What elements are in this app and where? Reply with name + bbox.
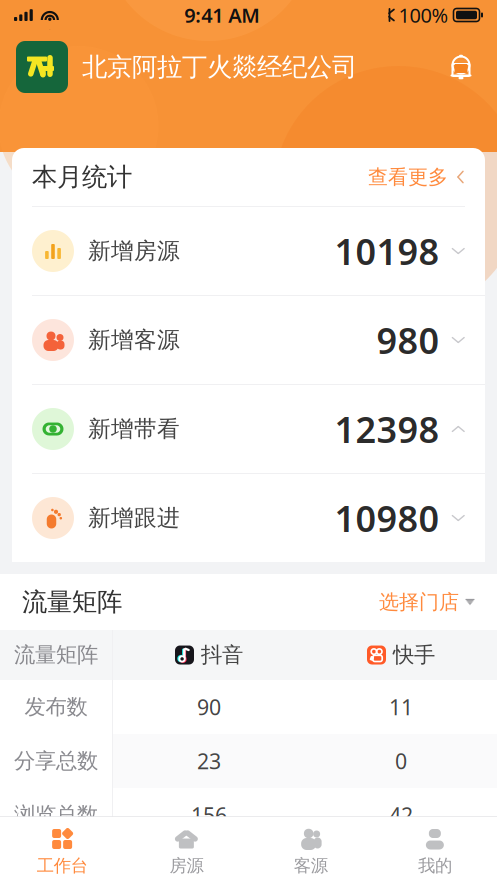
button[interactable]: 新增带看 [12,385,485,473]
staticText: 100% [398,2,448,28]
staticText: 新增客源 [88,326,180,354]
staticText: 0 [395,747,407,775]
staticText: 11 [389,693,413,721]
staticText: 选择门店 [379,590,459,614]
button[interactable]: 选择门店 [379,590,475,614]
staticText: 10198 [334,227,439,275]
button[interactable]: 本月统计 [12,148,485,206]
staticText: 查看更多 [368,165,448,189]
staticText: 流量矩阵 [22,586,122,617]
staticText: 客源 [294,855,328,876]
button[interactable]: 新增房源 [12,207,485,295]
staticText: 北京阿拉丁火燚经纪公司 [82,51,357,82]
staticText: 抖音 [201,642,243,668]
button[interactable]: 新增客源 [12,296,485,384]
staticText: 发布数 [24,694,87,720]
staticText: 12398 [334,405,439,453]
button[interactable]: 通知 [441,47,481,87]
staticText: 980 [376,316,439,364]
staticText: 我的 [418,855,452,876]
staticText: 新增房源 [88,237,180,265]
staticText: 156 [191,801,227,829]
staticText: 90 [197,693,221,721]
button[interactable]: 工作台 [0,821,124,880]
staticText: 42 [389,801,413,829]
staticText: 9:41 AM [184,2,260,28]
staticText: 新增跟进 [88,504,180,532]
staticText: 本月统计 [32,161,132,192]
staticText: 分享总数 [14,748,98,774]
button[interactable]: 房源 [124,821,248,880]
button[interactable]: 新增跟进 [12,474,485,562]
staticText: 新增带看 [88,415,180,443]
staticText: 23 [197,747,221,775]
staticText: 工作台 [37,855,88,876]
staticText: 快手 [393,642,435,668]
button[interactable]: 我的 [373,821,497,880]
button[interactable]: 客源 [248,821,373,880]
staticText: 房源 [169,855,203,876]
staticText: 10980 [334,494,439,542]
staticText: 浏览总数 [14,802,98,828]
staticText: 流量矩阵 [14,642,98,668]
